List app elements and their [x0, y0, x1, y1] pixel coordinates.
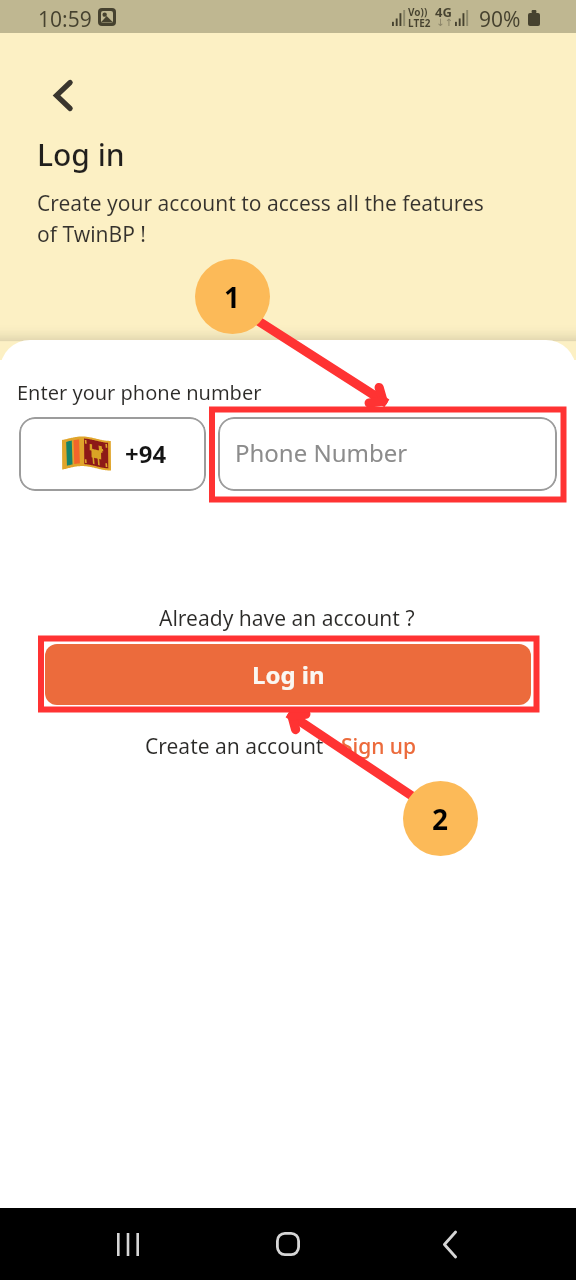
staticText: Enter your phone number [17, 379, 262, 406]
button[interactable]: Sign up [341, 732, 417, 761]
button[interactable]: Log in [45, 644, 531, 705]
staticText: Create your account to access all the fe… [37, 189, 489, 248]
staticText: Vo)) [408, 5, 428, 19]
button[interactable]: Back [402, 1216, 498, 1272]
staticText: Create an account [145, 732, 324, 761]
button[interactable]: Phone Number [218, 417, 557, 491]
staticText: 90% [479, 5, 521, 34]
staticText: ↓↑ [436, 17, 453, 29]
staticText: +94 [125, 437, 167, 470]
staticText: 10:59 [38, 5, 92, 34]
staticText: Sign up [341, 732, 417, 761]
staticText: 4G [435, 3, 452, 21]
button[interactable]: Recent apps [80, 1216, 176, 1272]
staticText: 1 [224, 278, 241, 316]
button[interactable]: +94 [19, 417, 206, 491]
staticText: Already have an account ? [159, 604, 415, 633]
button[interactable]: Back [43, 75, 83, 115]
button[interactable]: Home [240, 1216, 336, 1272]
staticText: Log in [252, 658, 325, 691]
staticText: 2 [432, 800, 449, 838]
staticText: Log in [37, 134, 125, 175]
staticText: LTE2 [408, 16, 431, 30]
staticText: Phone Number [235, 436, 408, 469]
